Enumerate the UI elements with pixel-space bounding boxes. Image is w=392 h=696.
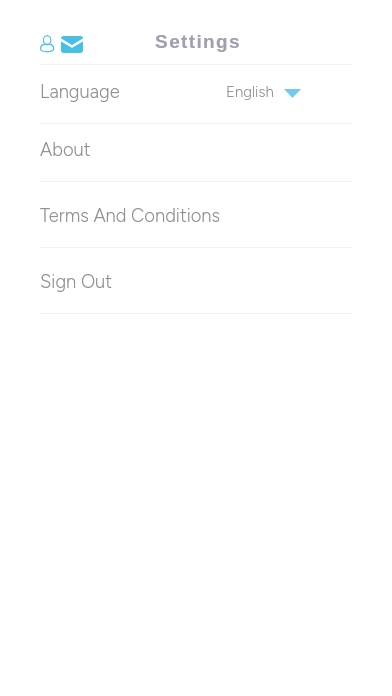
staticText: About — [40, 139, 91, 161]
staticText: English — [226, 83, 274, 101]
staticText: Language — [40, 81, 120, 103]
staticText: Settings — [2, 31, 392, 52]
button[interactable]: About — [0, 123, 392, 181]
button[interactable]: Profile — [40, 35, 55, 54]
button[interactable]: Language — [0, 64, 392, 123]
staticText: Sign Out — [40, 271, 113, 293]
button[interactable]: Sign Out — [0, 247, 392, 313]
button[interactable]: Terms And Conditions — [0, 181, 392, 247]
staticText: Terms And Conditions — [40, 205, 221, 227]
button[interactable]: Messages — [61, 36, 83, 53]
